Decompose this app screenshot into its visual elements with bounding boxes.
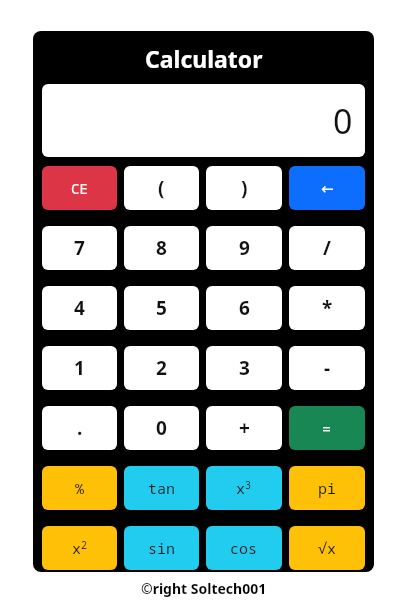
staticText: 2 — [156, 355, 167, 381]
button[interactable]: + — [206, 406, 282, 450]
staticText: ← — [321, 180, 334, 197]
staticText: 0 — [156, 415, 167, 441]
button[interactable]: √x — [289, 526, 365, 570]
button[interactable]: - — [289, 346, 365, 390]
staticText: % — [75, 478, 85, 498]
staticText: 1 — [74, 355, 85, 381]
button[interactable]: * — [289, 286, 365, 330]
staticText: - — [324, 355, 331, 381]
button[interactable]: 5 — [124, 286, 199, 330]
button[interactable]: 6 — [206, 286, 282, 330]
staticText: 7 — [74, 235, 85, 261]
button[interactable]: Backspace — [289, 166, 365, 210]
staticText: Calculator — [145, 43, 263, 74]
button[interactable]: 0 — [124, 406, 199, 450]
staticText: . — [77, 415, 83, 441]
staticText: x2 — [72, 538, 88, 558]
button[interactable]: / — [289, 226, 365, 270]
button[interactable]: 9 — [206, 226, 282, 270]
staticText: ©right Soltech001 — [141, 579, 267, 598]
staticText: tan — [148, 478, 176, 498]
button[interactable]: tan — [124, 466, 199, 510]
staticText: * — [322, 295, 333, 321]
staticText: CE — [71, 179, 88, 198]
button[interactable]: CE — [42, 166, 117, 210]
staticText: x3 — [236, 478, 252, 498]
staticText: 8 — [156, 235, 167, 261]
staticText: / — [323, 235, 331, 261]
staticText: 5 — [156, 295, 167, 321]
button[interactable]: % — [42, 466, 117, 510]
staticText: + — [239, 415, 250, 441]
button[interactable]: x2 — [42, 526, 117, 570]
button[interactable]: . — [42, 406, 117, 450]
button[interactable]: x3 — [206, 466, 282, 510]
button[interactable]: ) — [206, 166, 282, 210]
staticText: cos — [230, 538, 258, 558]
button[interactable]: sin — [124, 526, 199, 570]
button[interactable]: 8 — [124, 226, 199, 270]
button[interactable]: Display — [42, 84, 365, 157]
staticText: 4 — [74, 295, 85, 321]
button[interactable]: 4 — [42, 286, 117, 330]
staticText: pi — [318, 478, 337, 498]
staticText: ) — [241, 175, 248, 201]
button[interactable]: 1 — [42, 346, 117, 390]
button[interactable]: 2 — [124, 346, 199, 390]
button[interactable]: cos — [206, 526, 282, 570]
staticText: sin — [148, 538, 176, 558]
button[interactable]: 3 — [206, 346, 282, 390]
staticText: 9 — [239, 235, 250, 261]
staticText: ( — [158, 175, 165, 201]
button[interactable]: 7 — [42, 226, 117, 270]
staticText: = — [322, 418, 332, 438]
button[interactable]: = — [289, 406, 365, 450]
button[interactable]: pi — [289, 466, 365, 510]
button[interactable]: ( — [124, 166, 199, 210]
staticText: √x — [318, 538, 337, 558]
staticText: 3 — [239, 355, 250, 381]
staticText: 6 — [239, 295, 250, 321]
staticText: 0 — [333, 98, 353, 144]
